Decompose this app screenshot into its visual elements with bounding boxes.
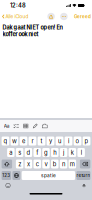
button[interactable]: Dictate <box>78 180 90 191</box>
staticText: x <box>27 160 30 168</box>
staticText: 123 <box>2 173 10 178</box>
staticText: w <box>12 137 17 145</box>
button[interactable]: l <box>77 148 85 157</box>
button[interactable]: e <box>20 136 27 145</box>
staticText: Aa <box>4 123 10 129</box>
staticText: u <box>58 137 61 145</box>
staticText: return <box>76 173 90 178</box>
button[interactable]: n <box>60 159 67 168</box>
staticText: p <box>84 137 88 145</box>
staticText: g <box>44 149 48 156</box>
button[interactable]: i <box>65 136 72 145</box>
button[interactable]: Alle iCloud <box>0 11 30 22</box>
staticText: y <box>49 137 52 145</box>
button[interactable]: c <box>33 159 41 168</box>
button[interactable]: Delete <box>80 159 90 168</box>
staticText: spatie <box>41 173 56 178</box>
button[interactable]: 123 <box>2 171 11 180</box>
staticText: h <box>53 149 56 156</box>
button[interactable]: p <box>83 136 90 145</box>
button[interactable]: u <box>56 136 63 145</box>
button[interactable]: Checklist <box>11 121 21 131</box>
button[interactable]: d <box>25 148 32 157</box>
button[interactable]: More <box>60 12 68 21</box>
button[interactable]: Aa <box>2 121 11 131</box>
staticText: z <box>18 160 21 168</box>
staticText: q <box>3 137 7 145</box>
staticText: Gereed <box>74 14 91 19</box>
button[interactable]: Emoji <box>2 180 14 191</box>
staticText: a <box>9 149 12 156</box>
button[interactable]: f <box>33 148 41 157</box>
staticText: m <box>70 160 75 168</box>
button[interactable]: Gereed <box>73 11 91 22</box>
button[interactable]: Next keyboard <box>12 171 20 180</box>
button[interactable]: g <box>42 148 50 157</box>
staticText: Alle iCloud <box>5 14 28 19</box>
button[interactable]: a <box>7 148 15 157</box>
button[interactable]: x <box>25 159 32 168</box>
staticText: t <box>40 137 42 145</box>
button[interactable]: spatie <box>22 171 75 180</box>
staticText: 12:48 <box>10 2 26 9</box>
button[interactable]: j <box>60 148 67 157</box>
button[interactable]: Camera <box>40 121 49 131</box>
staticText: b <box>53 160 57 168</box>
button[interactable]: z <box>16 159 23 168</box>
staticText: o <box>75 137 79 145</box>
staticText: s <box>18 149 21 156</box>
button[interactable]: k <box>69 148 76 157</box>
button[interactable]: Table <box>21 121 30 131</box>
staticText: d <box>26 149 30 156</box>
button[interactable]: h <box>51 148 58 157</box>
button[interactable]: Share <box>47 12 55 21</box>
staticText: r <box>31 137 33 145</box>
staticText: e <box>22 137 25 145</box>
button[interactable]: b <box>51 159 58 168</box>
button[interactable]: y <box>47 136 54 145</box>
button[interactable]: o <box>74 136 81 145</box>
staticText: l <box>81 149 82 156</box>
staticText: i <box>68 137 69 145</box>
button[interactable]: Markup <box>30 121 40 131</box>
staticText: n <box>62 160 65 168</box>
button[interactable]: r <box>29 136 36 145</box>
button[interactable]: m <box>69 159 76 168</box>
button[interactable]: q <box>2 136 9 145</box>
button[interactable]: return <box>76 171 90 180</box>
staticText: j <box>63 149 64 156</box>
staticText: f <box>36 149 38 156</box>
button[interactable]: w <box>11 136 18 145</box>
button[interactable]: Shift <box>2 159 12 168</box>
button[interactable]: v <box>42 159 50 168</box>
staticText: v <box>44 160 47 168</box>
staticText: k <box>71 149 74 156</box>
staticText: c <box>36 160 39 168</box>
button[interactable]: t <box>38 136 45 145</box>
staticText: Dak gaat NIET open! En koffer ook niet <box>2 24 62 38</box>
button[interactable]: s <box>16 148 23 157</box>
